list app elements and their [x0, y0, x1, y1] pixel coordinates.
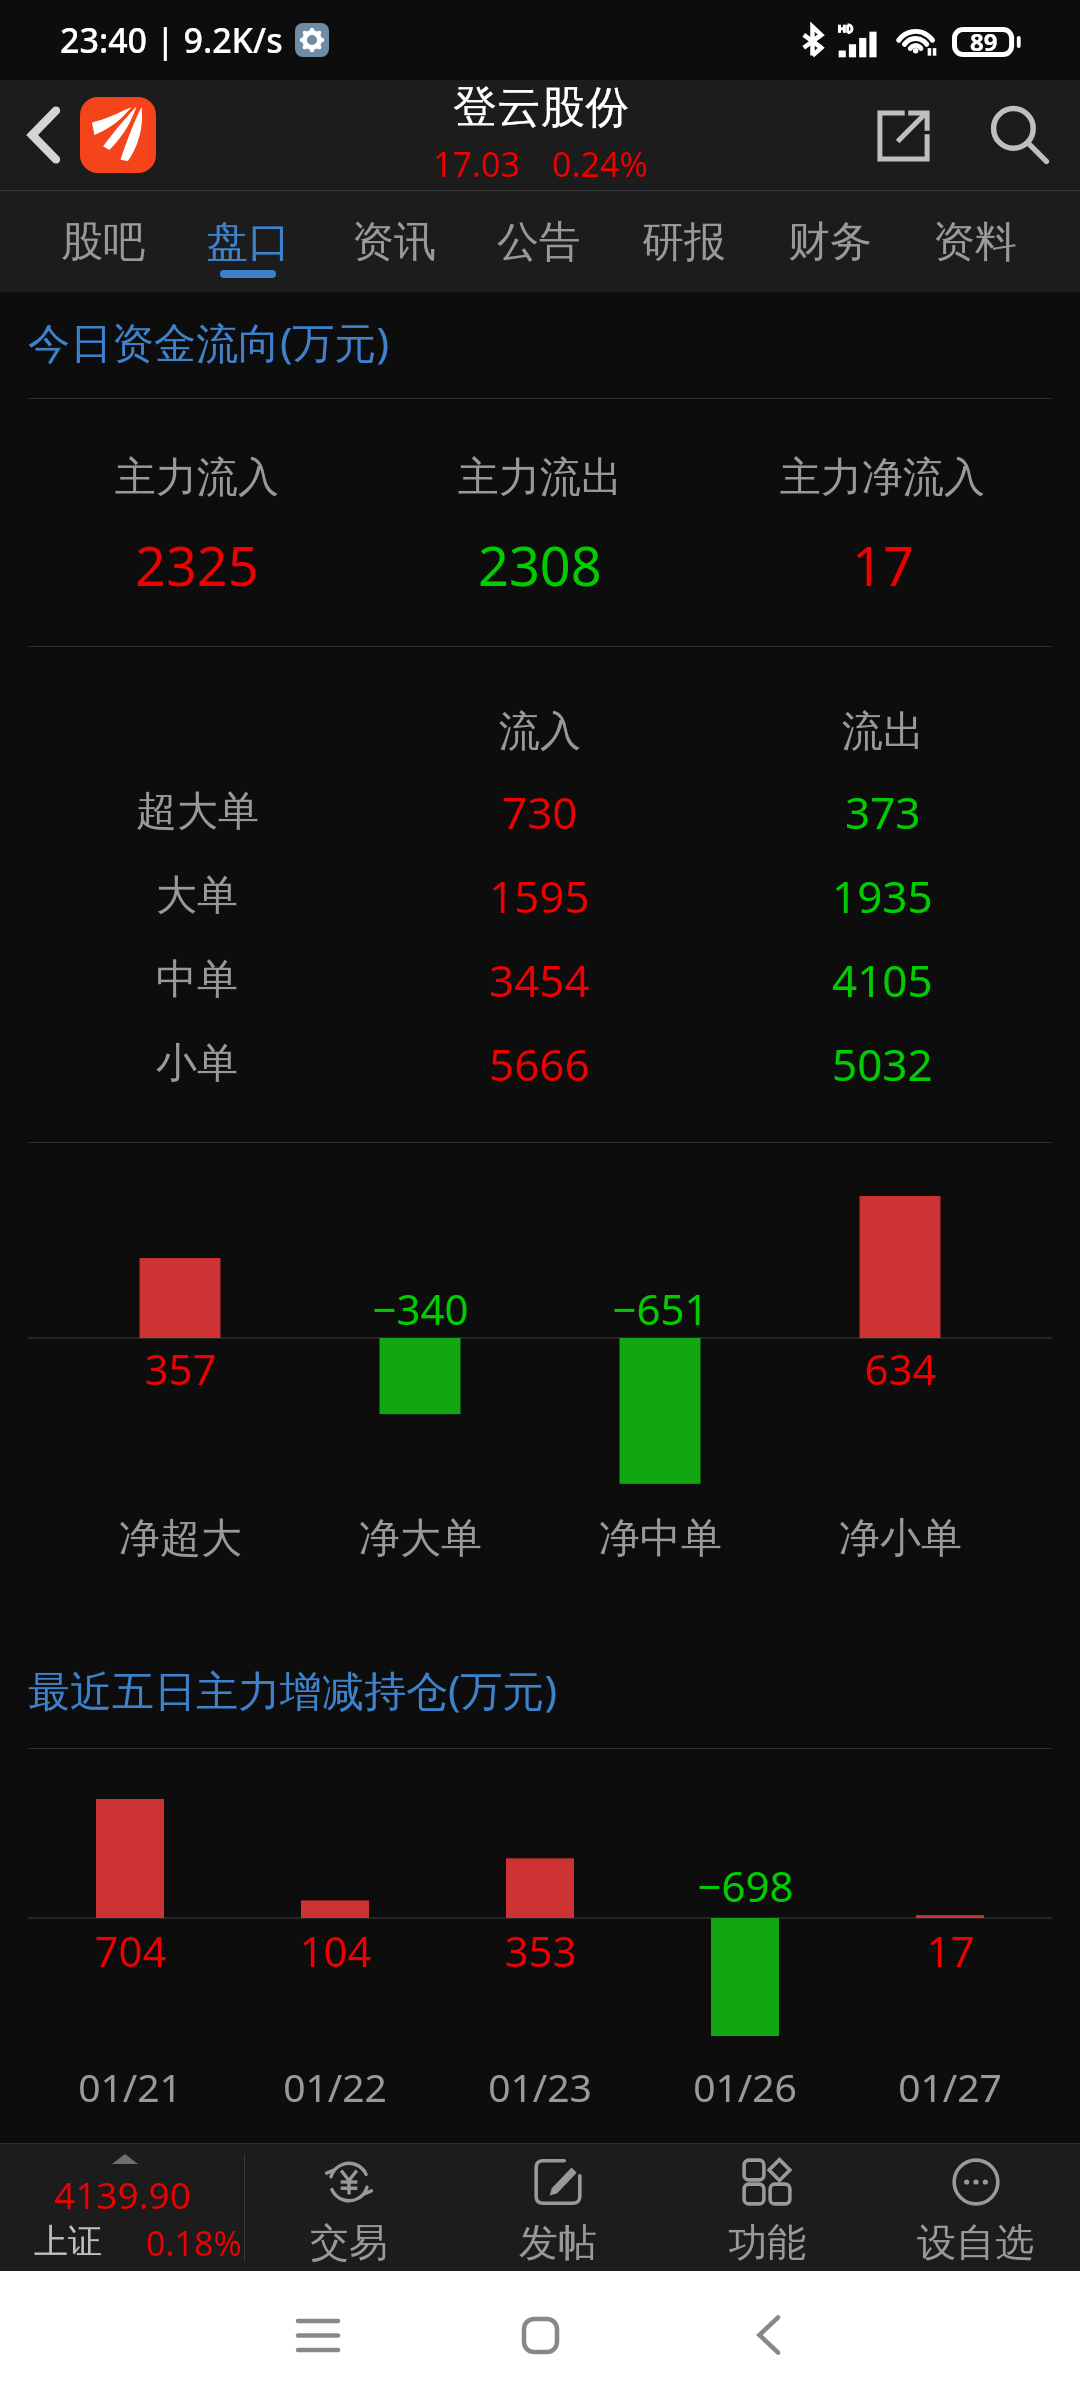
staticText: 373: [845, 782, 921, 842]
staticText: 设自选: [917, 2218, 1034, 2267]
button[interactable]: 交易: [245, 2144, 453, 2271]
staticText: 23:40 | 9.2K/s: [60, 17, 283, 63]
staticText: 净中单: [599, 1513, 722, 1565]
staticText: 2308: [478, 528, 602, 602]
button[interactable]: 资讯: [322, 191, 466, 292]
staticText: 704: [94, 1922, 167, 1979]
staticText: 104: [299, 1922, 372, 1979]
button[interactable]: 发帖: [453, 2144, 662, 2271]
staticText: 01/22: [283, 2060, 387, 2113]
staticText: 小单: [156, 1038, 238, 1090]
button[interactable]: 设自选: [871, 2144, 1080, 2271]
staticText: 5032: [832, 1034, 933, 1094]
staticText: 1935: [832, 866, 933, 926]
staticText: 主力净流入: [780, 452, 985, 504]
staticText: 功能: [728, 2218, 806, 2267]
staticText: 357: [144, 1340, 217, 1397]
staticText: 0.24%: [552, 141, 648, 187]
staticText: 中单: [156, 954, 238, 1006]
staticText: 发帖: [519, 2218, 597, 2267]
staticText: 流出: [842, 706, 924, 758]
staticText: 01/26: [693, 2060, 797, 2113]
staticText: 3454: [489, 950, 590, 1010]
staticText: 2325: [135, 528, 259, 602]
staticText: 盘口: [206, 216, 290, 269]
button[interactable]: Home: [500, 2295, 580, 2375]
button[interactable]: Back: [8, 100, 78, 170]
staticText: 净小单: [839, 1513, 962, 1565]
staticText: 4105: [832, 950, 933, 1010]
button[interactable]: Eastmoney: [80, 97, 156, 173]
button[interactable]: 股吧: [31, 191, 175, 292]
staticText: 17: [852, 528, 914, 602]
staticText: −340: [372, 1280, 469, 1337]
staticText: 资讯: [352, 216, 436, 269]
staticText: 1595: [489, 866, 590, 926]
staticText: −651: [612, 1280, 709, 1337]
staticText: 730: [502, 782, 578, 842]
staticText: 资料: [933, 216, 1017, 269]
button[interactable]: Back: [728, 2295, 808, 2375]
staticText: 交易: [310, 2218, 388, 2267]
button[interactable]: 盘口: [176, 191, 320, 292]
staticText: 01/21: [78, 2060, 182, 2113]
staticText: 流入: [499, 706, 581, 758]
staticText: 公告: [497, 216, 581, 269]
staticText: 01/27: [898, 2060, 1002, 2113]
staticText: 研报: [642, 216, 726, 269]
button[interactable]: Search: [977, 85, 1063, 185]
staticText: 大单: [156, 870, 238, 922]
staticText: 股吧: [61, 216, 145, 269]
button[interactable]: 4139.90: [0, 2144, 244, 2271]
button[interactable]: 资料: [903, 191, 1047, 292]
staticText: −698: [697, 1857, 794, 1914]
staticText: 634: [864, 1340, 937, 1397]
staticText: 超大单: [136, 786, 259, 838]
button[interactable]: 财务: [758, 191, 902, 292]
staticText: 净大单: [359, 1513, 482, 1565]
staticText: 01/23: [488, 2060, 592, 2113]
staticText: 今日资金流向(万元): [28, 313, 390, 370]
staticText: 主力流出: [458, 452, 622, 504]
staticText: 17: [926, 1922, 975, 1979]
button[interactable]: 公告: [467, 191, 611, 292]
button[interactable]: 功能: [662, 2144, 871, 2271]
staticText: 0.18%: [146, 2220, 242, 2266]
button[interactable]: 研报: [612, 191, 756, 292]
staticText: 登云股份: [453, 80, 629, 135]
staticText: 89: [970, 25, 998, 58]
staticText: 17.03: [433, 141, 520, 187]
staticText: 5666: [489, 1034, 590, 1094]
staticText: 财务: [788, 216, 872, 269]
staticText: 上证: [34, 2220, 102, 2263]
staticText: 4139.90: [54, 2169, 191, 2219]
staticText: 最近五日主力增减持仓(万元): [28, 1661, 558, 1718]
button[interactable]: Share: [829, 85, 977, 185]
button[interactable]: Recent apps: [278, 2295, 358, 2375]
staticText: 净超大: [119, 1513, 242, 1565]
staticText: 主力流入: [115, 452, 279, 504]
staticText: 353: [504, 1922, 577, 1979]
